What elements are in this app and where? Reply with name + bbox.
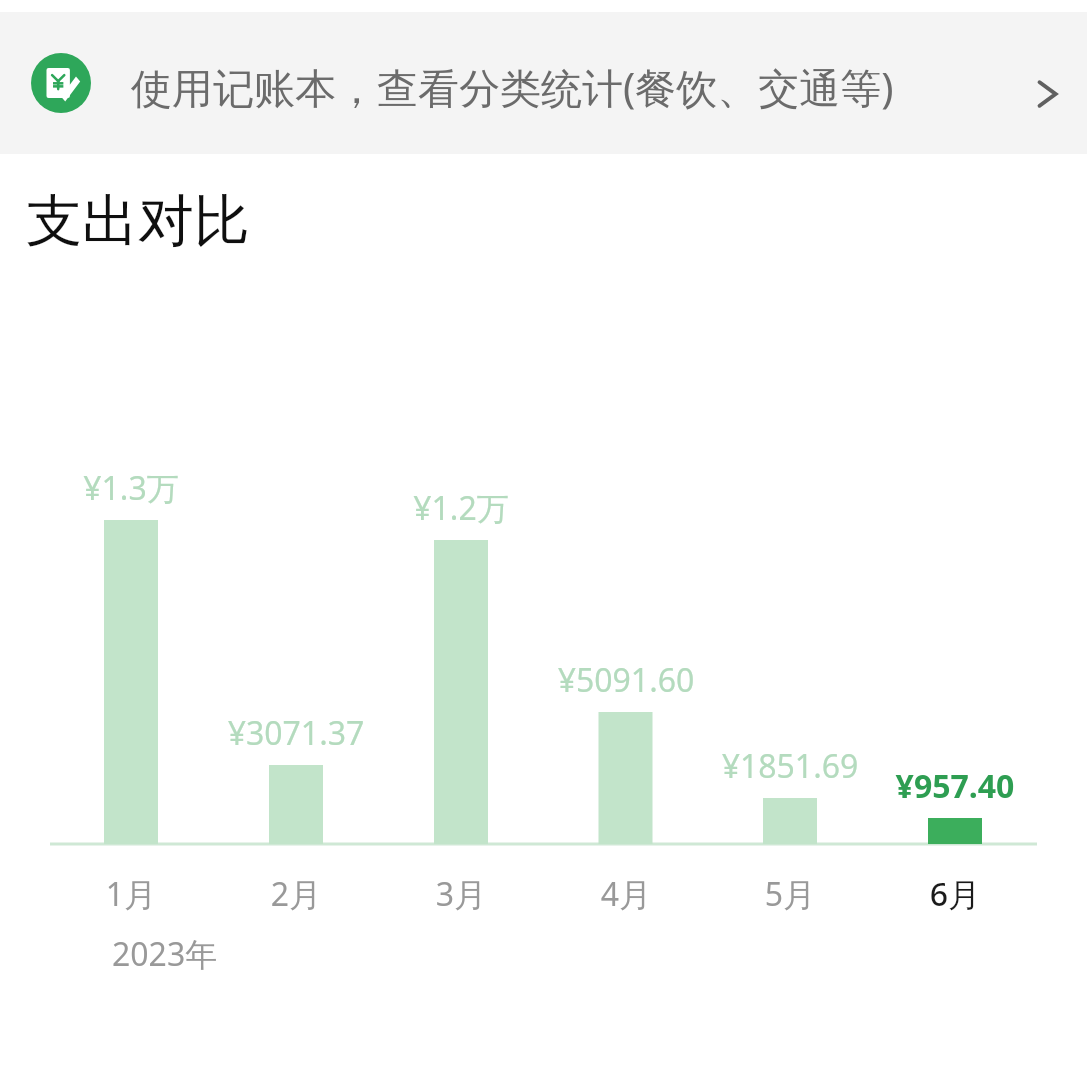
button[interactable]: 使用记账本，查看分类统计(餐饮、交通等)	[0, 12, 1087, 154]
staticText: 3月	[311, 872, 611, 916]
staticText: ¥1851.69	[640, 744, 940, 788]
staticText: ¥1.2万	[311, 486, 611, 530]
staticText: 使用记账本，查看分类统计(餐饮、交通等)	[131, 59, 894, 115]
staticText: ¥1.3万	[0, 466, 281, 510]
staticText: 5月	[640, 872, 940, 916]
staticText: ¥3071.37	[146, 711, 446, 755]
staticText: 支出对比	[26, 186, 250, 257]
staticText: 2023年	[112, 932, 218, 976]
staticText: 6月	[805, 872, 1087, 916]
staticText: 4月	[476, 872, 776, 916]
other: 查看分类统计	[1027, 73, 1069, 115]
staticText: 1月	[0, 872, 281, 916]
staticText: ¥5091.60	[476, 658, 776, 702]
staticText: 2月	[146, 872, 446, 916]
staticText: ¥957.40	[805, 764, 1087, 808]
